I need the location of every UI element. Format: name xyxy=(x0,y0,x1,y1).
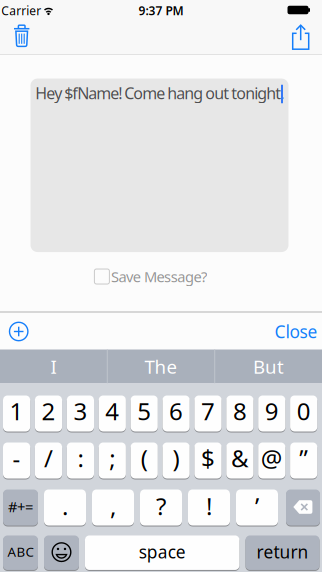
staticText: 9 xyxy=(265,395,279,427)
staticText: @ xyxy=(261,442,283,474)
staticText: ; xyxy=(109,442,115,474)
button[interactable]: @ xyxy=(258,442,285,479)
button[interactable]: ( xyxy=(131,442,158,479)
staticText: ’ xyxy=(255,490,259,522)
button[interactable]: ’ xyxy=(236,489,278,526)
button[interactable]: ” xyxy=(290,442,317,479)
button[interactable]: Close xyxy=(274,320,317,343)
button[interactable]: Delete message xyxy=(13,24,31,48)
button[interactable]: $ xyxy=(194,442,222,479)
staticText: ! xyxy=(206,490,212,522)
button[interactable]: & xyxy=(226,442,253,479)
button[interactable]: - xyxy=(3,442,30,479)
staticText: Carrier xyxy=(1,2,41,18)
staticText: ? xyxy=(156,490,166,522)
staticText: $ xyxy=(201,442,215,474)
button[interactable]: ; xyxy=(99,442,126,479)
button[interactable]: ) xyxy=(162,442,190,479)
button[interactable]: ? xyxy=(140,489,182,526)
staticText: 0 xyxy=(297,395,311,427)
button[interactable]: 3 xyxy=(67,395,94,432)
button[interactable]: Delete xyxy=(286,489,320,526)
staticText: 8 xyxy=(233,395,247,427)
staticText: The xyxy=(144,354,177,379)
button[interactable]: ABC xyxy=(3,535,38,570)
button[interactable]: / xyxy=(35,442,62,479)
staticText: 5 xyxy=(137,395,151,427)
staticText: 7 xyxy=(201,395,215,427)
button[interactable]: Share xyxy=(292,24,310,50)
staticText: 4 xyxy=(105,395,119,427)
button[interactable]: 6 xyxy=(162,395,190,432)
button[interactable]: 0 xyxy=(290,395,317,432)
staticText: ” xyxy=(299,442,308,474)
staticText: , xyxy=(110,490,116,522)
staticText: Save Message? xyxy=(111,267,207,286)
staticText: 6 xyxy=(169,395,183,427)
button[interactable]: Add xyxy=(9,321,29,341)
button[interactable]: 7 xyxy=(194,395,222,432)
staticText: space xyxy=(139,540,186,563)
staticText: - xyxy=(13,442,21,474)
button[interactable]: I xyxy=(2,349,106,383)
button[interactable]: , xyxy=(92,489,134,526)
staticText: I xyxy=(51,354,57,379)
button[interactable]: 1 xyxy=(3,395,30,432)
button[interactable]: 4 xyxy=(99,395,126,432)
staticText: Close xyxy=(274,320,317,343)
staticText: return xyxy=(256,540,308,563)
button[interactable]: Emoji xyxy=(44,535,79,570)
button[interactable]: But xyxy=(216,349,320,383)
button[interactable]: #+= xyxy=(3,489,38,526)
button[interactable]: 2 xyxy=(35,395,62,432)
button[interactable]: . xyxy=(44,489,86,526)
staticText: Hey $fName! Come hang out tonight. xyxy=(35,82,284,104)
button[interactable]: The xyxy=(109,349,213,383)
staticText: 9:37 PM xyxy=(138,2,183,18)
staticText: & xyxy=(231,442,249,474)
staticText: 2 xyxy=(41,395,55,427)
button[interactable]: space xyxy=(85,535,239,570)
button[interactable]: 8 xyxy=(226,395,253,432)
button[interactable]: ! xyxy=(188,489,230,526)
staticText: But xyxy=(253,354,284,379)
staticText: ( xyxy=(141,442,148,474)
staticText: 1 xyxy=(10,395,24,427)
staticText: ABC xyxy=(7,543,33,560)
button[interactable]: 5 xyxy=(131,395,158,432)
staticText: : xyxy=(77,442,83,474)
button[interactable]: Save Message? xyxy=(94,267,207,286)
button[interactable]: : xyxy=(67,442,94,479)
button[interactable]: return xyxy=(245,535,319,570)
staticText: ) xyxy=(173,442,180,474)
button[interactable]: 9 xyxy=(258,395,285,432)
staticText: . xyxy=(62,490,68,522)
staticText: 3 xyxy=(73,395,87,427)
staticText: #+= xyxy=(8,497,33,516)
staticText: / xyxy=(44,442,53,474)
